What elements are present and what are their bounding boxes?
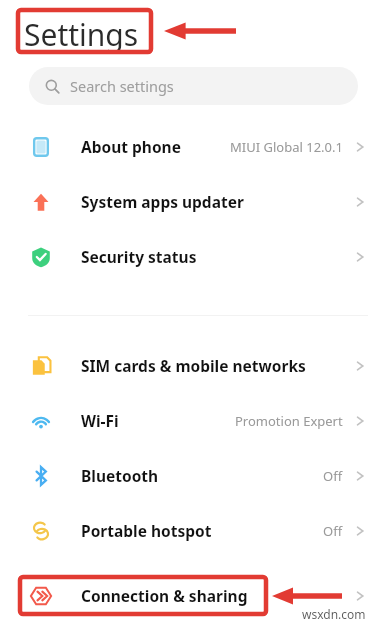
- staticText: Search settings: [70, 76, 174, 96]
- button[interactable]: Settings: [24, 14, 139, 55]
- other: Security status: [30, 246, 52, 268]
- button[interactable]: System apps updater: [0, 183, 387, 220]
- other: System apps updater: [30, 191, 52, 213]
- other: SIM cards & mobile networks: [30, 355, 52, 377]
- other: Bluetooth: [30, 465, 52, 487]
- staticText: Wi-Fi: [81, 410, 119, 431]
- button[interactable]: Wi-Fi: [0, 402, 387, 439]
- other: Wi-Fi: [30, 410, 52, 432]
- button[interactable]: About phone: [0, 128, 387, 165]
- staticText: SIM cards & mobile networks: [81, 355, 306, 376]
- staticText: Bluetooth: [81, 465, 159, 486]
- staticText: Settings: [24, 14, 139, 55]
- button[interactable]: Connection & sharing: [0, 577, 387, 614]
- staticText: Security status: [81, 246, 197, 267]
- staticText: Off: [323, 467, 343, 485]
- staticText: Connection & sharing: [81, 585, 248, 606]
- staticText: wsxdn.com: [302, 606, 366, 622]
- staticText: Promotion Expert: [235, 412, 343, 430]
- other: About phone: [30, 136, 52, 158]
- staticText: Portable hotspot: [81, 520, 212, 541]
- staticText: About phone: [81, 136, 181, 157]
- staticText: Off: [323, 522, 343, 540]
- button[interactable]: Portable hotspot: [0, 512, 387, 549]
- staticText: System apps updater: [81, 191, 244, 212]
- staticText: MIUI Global 12.0.1: [230, 138, 343, 156]
- button[interactable]: SIM cards & mobile networks: [0, 347, 387, 384]
- button[interactable]: Bluetooth: [0, 457, 387, 494]
- other: Connection & sharing: [30, 585, 52, 607]
- button[interactable]: Security status: [0, 238, 387, 275]
- button[interactable]: Search settings: [29, 67, 358, 105]
- other: Portable hotspot: [30, 520, 52, 542]
